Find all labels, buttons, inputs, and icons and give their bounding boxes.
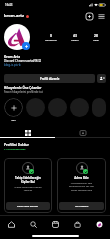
button[interactable]: New post [84, 11, 95, 22]
button[interactable]: Discover people [97, 74, 106, 83]
staticText: 0 [50, 33, 52, 38]
button[interactable]: 43 [71, 33, 79, 41]
staticText: 43 [73, 33, 77, 38]
staticText: Favori hikayelerini profilinde tut [4, 90, 43, 94]
button[interactable]: Adres Ekle [57, 158, 106, 213]
button[interactable]: Highlight [70, 98, 89, 117]
button[interactable]: Highlight [92, 98, 106, 117]
staticText: Krom Artz [4, 55, 20, 59]
staticText: Daha Fazla Kişi Bul [17, 205, 39, 208]
button[interactable]: krom.artz [4, 13, 29, 19]
staticText: Takipçi [71, 38, 79, 41]
button[interactable]: 0 [45, 33, 57, 41]
staticText: krom.artz [4, 13, 25, 19]
button[interactable]: Profile [88, 216, 110, 233]
staticText: Profilini Doldur [4, 142, 29, 146]
staticText: 16:43 [5, 3, 13, 7]
staticText: 28 [94, 33, 98, 38]
button[interactable]: Profile photo [4, 24, 30, 50]
button[interactable]: Daha Fazla Kişi Bul [6, 202, 50, 210]
staticText: Takip [93, 38, 99, 41]
button[interactable]: Highlight [26, 98, 45, 117]
button[interactable]: Add story [22, 42, 30, 50]
staticText: Discord Chromeuxrtz#9632 [4, 59, 42, 63]
staticText: 5 veya daha fazla hesabı takip et [6, 185, 50, 192]
button[interactable]: Reels [44, 216, 66, 233]
button[interactable]: Home [0, 216, 22, 233]
staticText: Adı Düzenle [75, 205, 89, 208]
staticText: Takip Edebileceğin Kişiler Bul [6, 176, 50, 184]
staticText: Hikayelerde Öne Çıkanlar [4, 86, 42, 90]
button[interactable]: Yeni [4, 98, 23, 121]
button[interactable]: Menu [96, 11, 107, 22]
staticText: Arkadaşlarının seni bulmasına izin ver i… [59, 181, 104, 192]
button[interactable]: Takip Edebileceğin Kişiler Bul [4, 158, 52, 213]
button[interactable]: Adı Düzenle [59, 202, 104, 210]
button[interactable]: Profili düzenle [4, 74, 95, 83]
button[interactable]: Tagged posts [55, 128, 110, 137]
button[interactable]: 28 [93, 33, 99, 41]
staticText: Gönderiler [45, 38, 57, 41]
button[interactable]: Highlight [48, 98, 67, 117]
staticText: Yeni [11, 118, 16, 121]
staticText: Profili düzenle [40, 77, 60, 81]
staticText: 4 / 6 TAMAMLANDI [4, 148, 26, 151]
button[interactable]: Posts grid [0, 128, 55, 137]
button[interactable]: Search [22, 216, 44, 233]
staticText: blog-ic.pt.rb [4, 63, 21, 67]
staticText: Adres Ekle [59, 176, 104, 180]
button[interactable]: Shop [66, 216, 88, 233]
